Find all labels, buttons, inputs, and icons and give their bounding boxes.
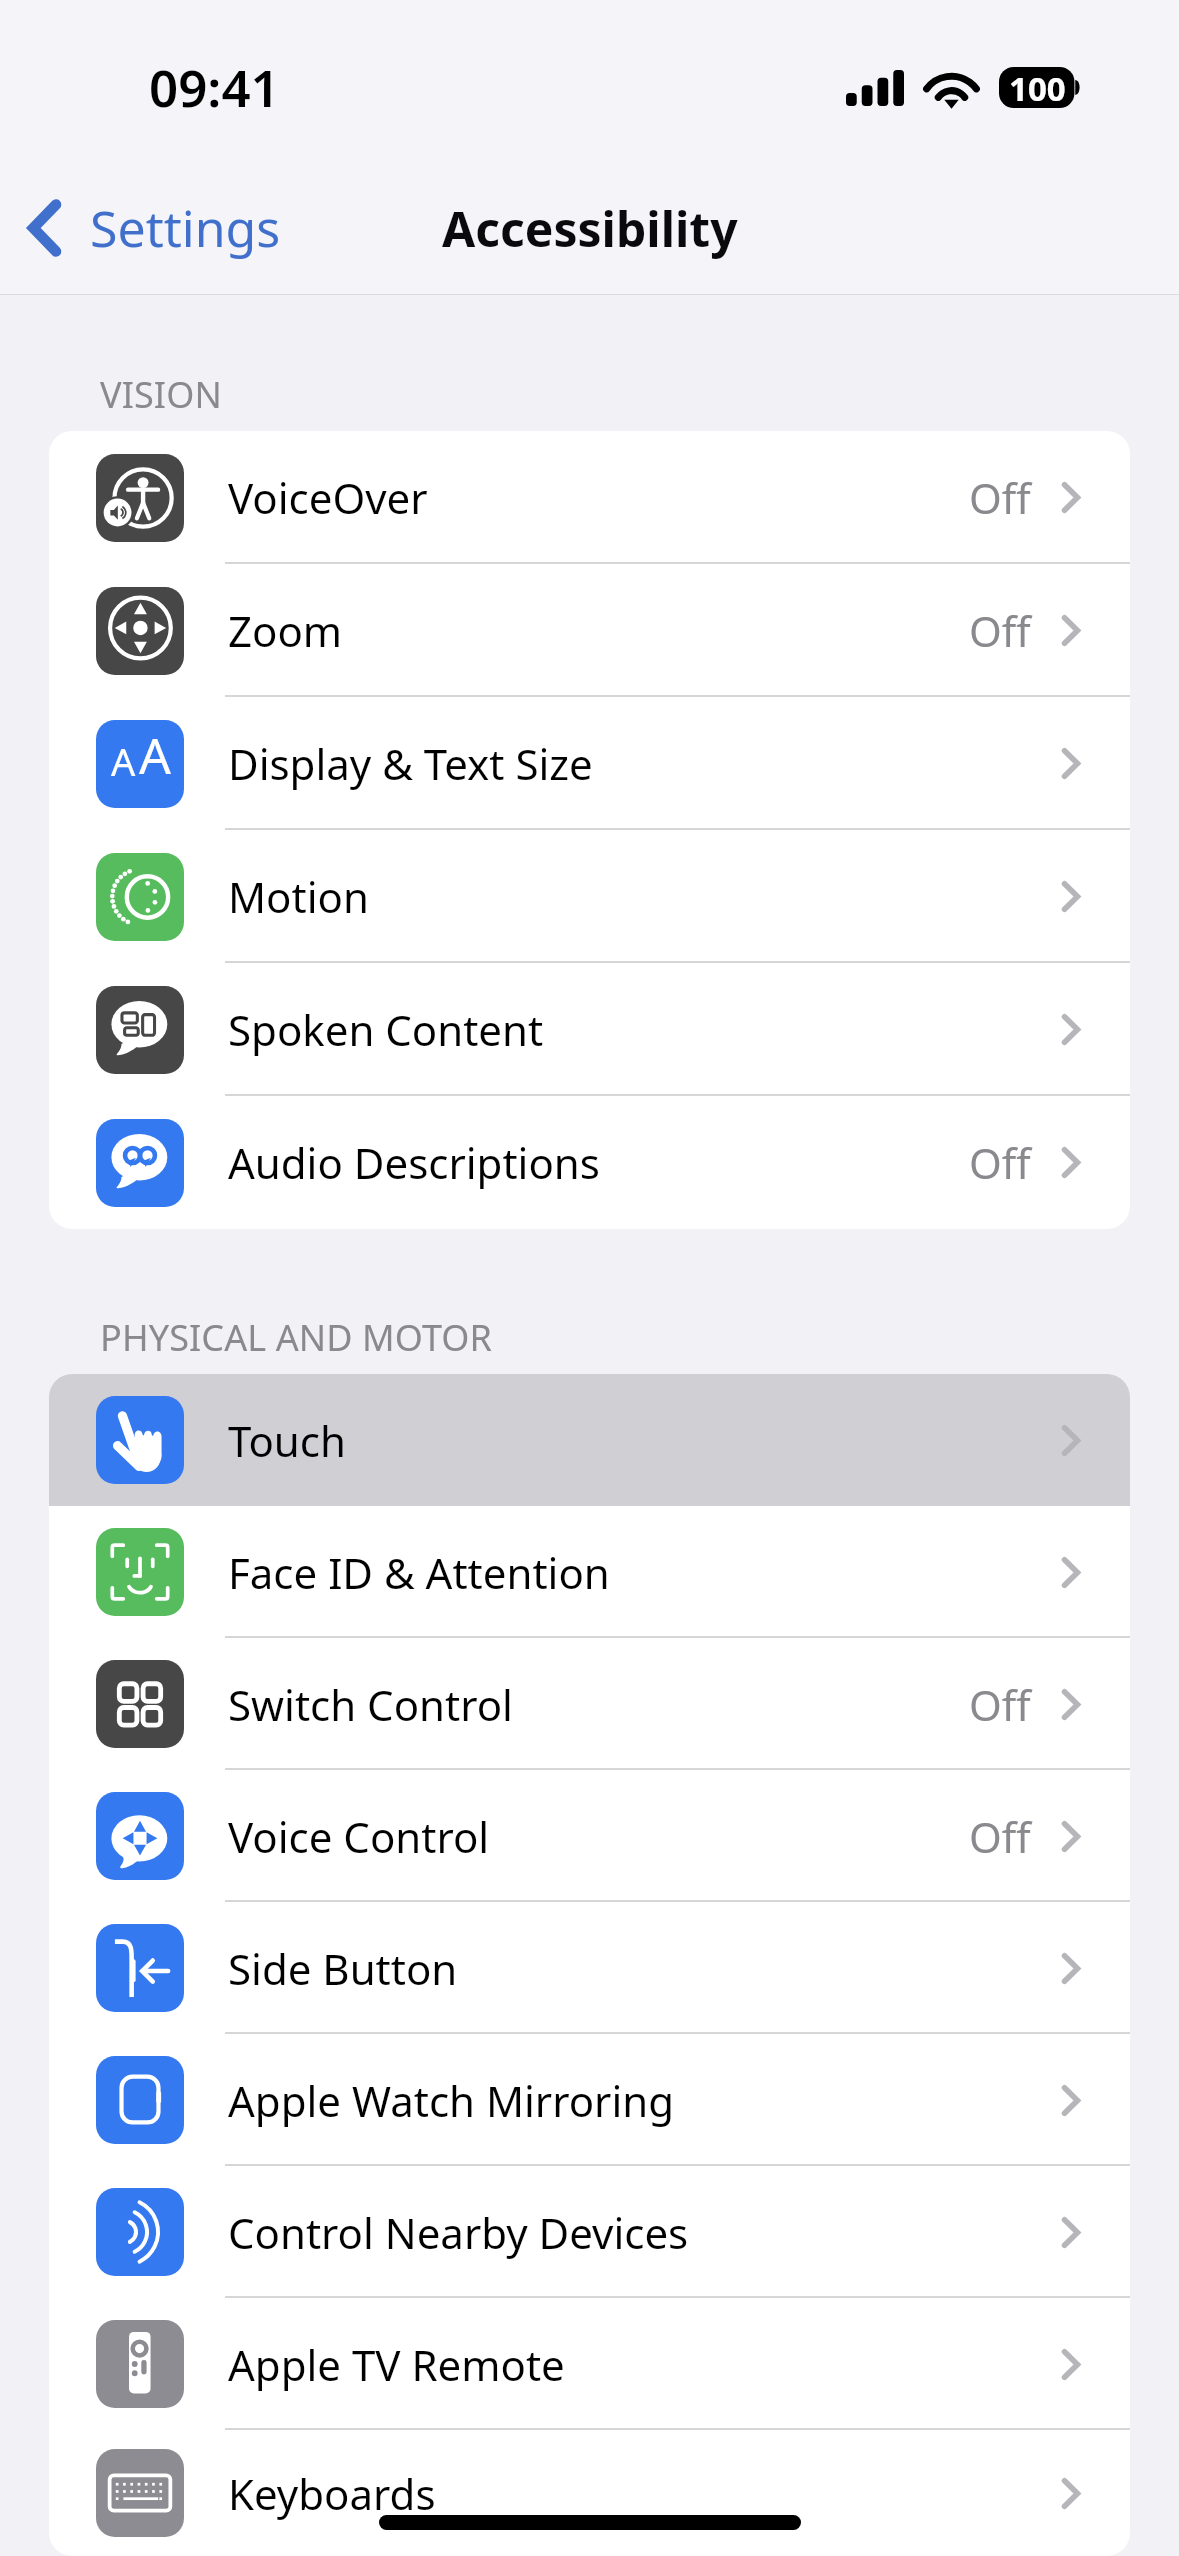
button[interactable]: Face ID & Attention (49, 1506, 1130, 1638)
staticText: Settings (90, 194, 281, 262)
staticText: Display & Text Size (228, 735, 593, 792)
button[interactable]: Control Nearby Devices (49, 2166, 1130, 2298)
button[interactable]: Spoken Content (49, 963, 1130, 1096)
button[interactable]: Back to Settings (28, 194, 281, 262)
staticText: Face ID & Attention (228, 1544, 610, 1601)
button[interactable]: Apple TV Remote (49, 2298, 1130, 2430)
staticText: Touch (228, 1412, 346, 1469)
staticText: PHYSICAL AND MOTOR (100, 1313, 493, 1362)
staticText: Accessibility (442, 196, 738, 261)
button[interactable]: Audio Descriptions (49, 1096, 1130, 1229)
staticText: Off (969, 1676, 1031, 1733)
staticText: Keyboards (228, 2465, 436, 2522)
button[interactable]: Touch (49, 1374, 1130, 1506)
staticText: Switch Control (228, 1676, 513, 1733)
staticText: Voice Control (228, 1808, 490, 1865)
staticText: A (139, 721, 171, 789)
staticText: VISION (100, 370, 222, 419)
staticText: VoiceOver (228, 469, 428, 526)
staticText: 100 (1009, 66, 1066, 107)
button[interactable]: Switch Control (49, 1638, 1130, 1770)
staticText: A (111, 735, 136, 787)
button[interactable]: Voice Control (49, 1770, 1130, 1902)
staticText: Off (969, 469, 1031, 526)
staticText: Spoken Content (228, 1001, 544, 1058)
button[interactable]: VoiceOver (49, 431, 1130, 564)
staticText: Zoom (228, 602, 343, 659)
staticText: Apple Watch Mirroring (228, 2072, 675, 2129)
staticText: Off (969, 602, 1031, 659)
button[interactable]: Side Button (49, 1902, 1130, 2034)
staticText: Apple TV Remote (228, 2336, 565, 2393)
button[interactable]: Apple Watch Mirroring (49, 2034, 1130, 2166)
button[interactable]: Zoom (49, 564, 1130, 697)
button[interactable]: A (49, 697, 1130, 830)
staticText: Motion (228, 868, 369, 925)
staticText: Side Button (228, 1940, 458, 1997)
other: Back to Settings (28, 199, 61, 257)
staticText: Off (969, 1808, 1031, 1865)
staticText: Audio Descriptions (228, 1134, 600, 1191)
staticText: Control Nearby Devices (228, 2204, 689, 2261)
button[interactable]: Motion (49, 830, 1130, 963)
staticText: 09:41 (149, 52, 280, 121)
button[interactable]: Keyboards (49, 2430, 1130, 2556)
staticText: Off (969, 1134, 1031, 1191)
